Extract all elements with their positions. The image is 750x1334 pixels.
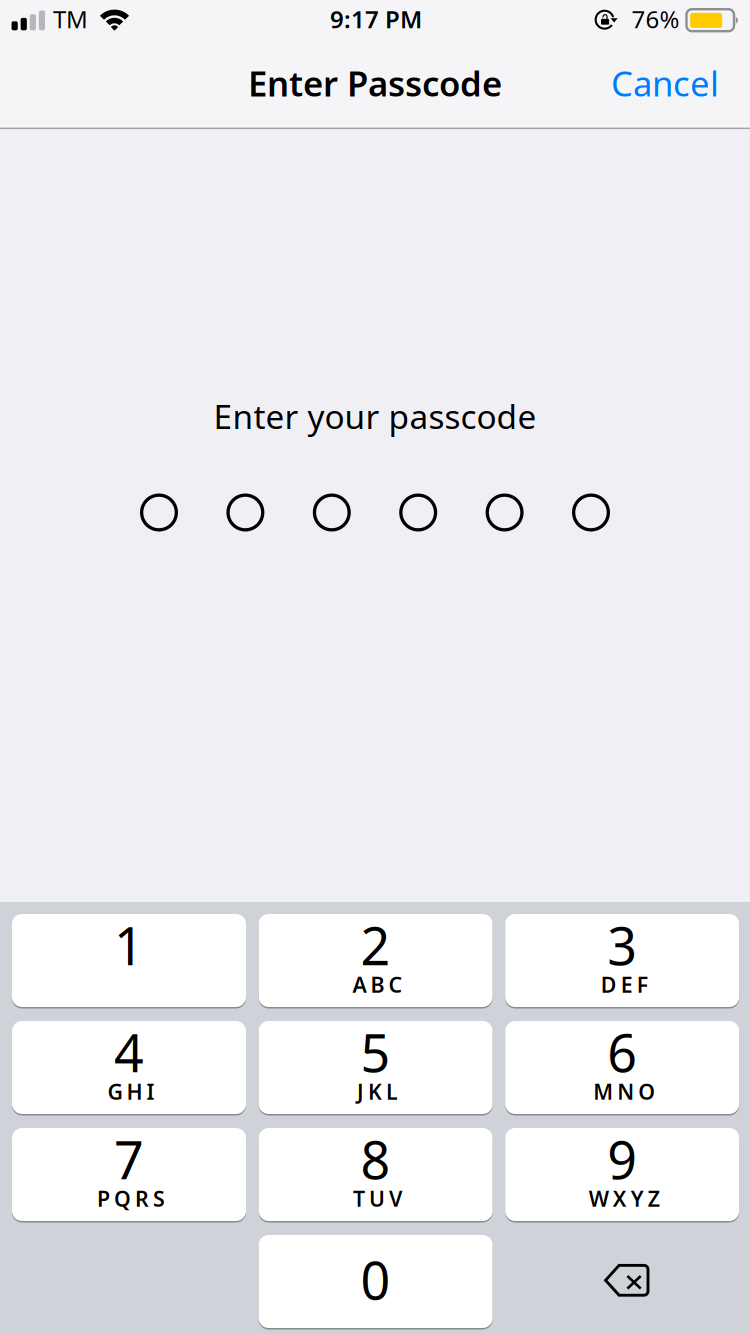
staticText: 1 — [114, 910, 144, 980]
staticText: Cancel — [611, 60, 719, 106]
staticText: ABC — [353, 970, 403, 999]
button[interactable]: 0 — [259, 1235, 493, 1330]
button[interactable]: 3 — [505, 914, 739, 1009]
staticText: 8 — [361, 1124, 391, 1194]
button[interactable]: 5 — [259, 1021, 493, 1116]
staticText: 9:17 PM — [330, 3, 422, 35]
staticText: 2 — [361, 910, 391, 980]
staticText: 4 — [114, 1017, 144, 1087]
button[interactable]: 9 — [505, 1128, 739, 1223]
staticText: 3 — [607, 910, 637, 980]
staticText: GHI — [107, 1077, 154, 1106]
button[interactable]: 6 — [505, 1021, 739, 1116]
button[interactable]: Cancel — [595, 53, 735, 113]
staticText: TUV — [353, 1184, 402, 1213]
staticText: 0 — [361, 1245, 391, 1314]
button[interactable]: 4 — [12, 1021, 246, 1116]
staticText: 76% — [632, 3, 680, 35]
staticText: Enter your passcode — [213, 394, 536, 438]
staticText: DEF — [601, 970, 648, 999]
staticText: Enter Passcode — [248, 60, 502, 106]
staticText: 9 — [607, 1124, 637, 1194]
button[interactable]: 8 — [259, 1128, 493, 1223]
button[interactable]: 7 — [12, 1128, 246, 1223]
staticText: JKL — [357, 1077, 398, 1106]
staticText: WXYZ — [589, 1184, 660, 1213]
staticText: 5 — [361, 1017, 391, 1087]
button[interactable]: Delete — [505, 1235, 739, 1328]
staticText: PQRS — [97, 1184, 165, 1213]
staticText: TM — [53, 3, 88, 35]
staticText: 7 — [114, 1124, 144, 1194]
staticText: MNO — [593, 1077, 655, 1106]
button[interactable]: 2 — [259, 914, 493, 1009]
button[interactable]: 1 — [12, 914, 246, 1009]
staticText: 6 — [607, 1017, 637, 1087]
